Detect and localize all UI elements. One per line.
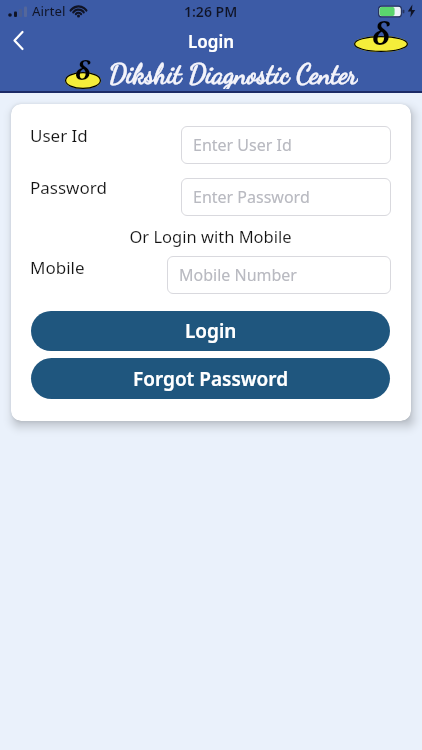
staticText: Enter Password (193, 186, 310, 208)
staticText: Forgot Password (133, 366, 289, 392)
staticText: Login (185, 318, 237, 344)
staticText: δ (372, 13, 390, 46)
button[interactable]: Enter Password (181, 178, 391, 216)
button[interactable]: Login (31, 311, 390, 351)
staticText: Enter User Id (193, 134, 292, 156)
staticText: Password (30, 176, 107, 199)
staticText: Or Login with Mobile (30, 225, 391, 247)
staticText: δ (75, 52, 91, 83)
button[interactable] (4, 26, 32, 54)
staticText: 1:26 PM (184, 2, 238, 21)
staticText: Dikshit Diagnostic Center (109, 58, 358, 89)
button[interactable]: Enter User Id (181, 126, 391, 164)
button[interactable]: Mobile Number (167, 256, 391, 294)
staticText: Airtel (32, 2, 66, 20)
button[interactable]: Forgot Password (31, 358, 390, 399)
staticText: Mobile Number (179, 264, 297, 286)
staticText: Login (188, 30, 235, 53)
staticText: Mobile (30, 256, 85, 279)
staticText: User Id (30, 124, 88, 147)
